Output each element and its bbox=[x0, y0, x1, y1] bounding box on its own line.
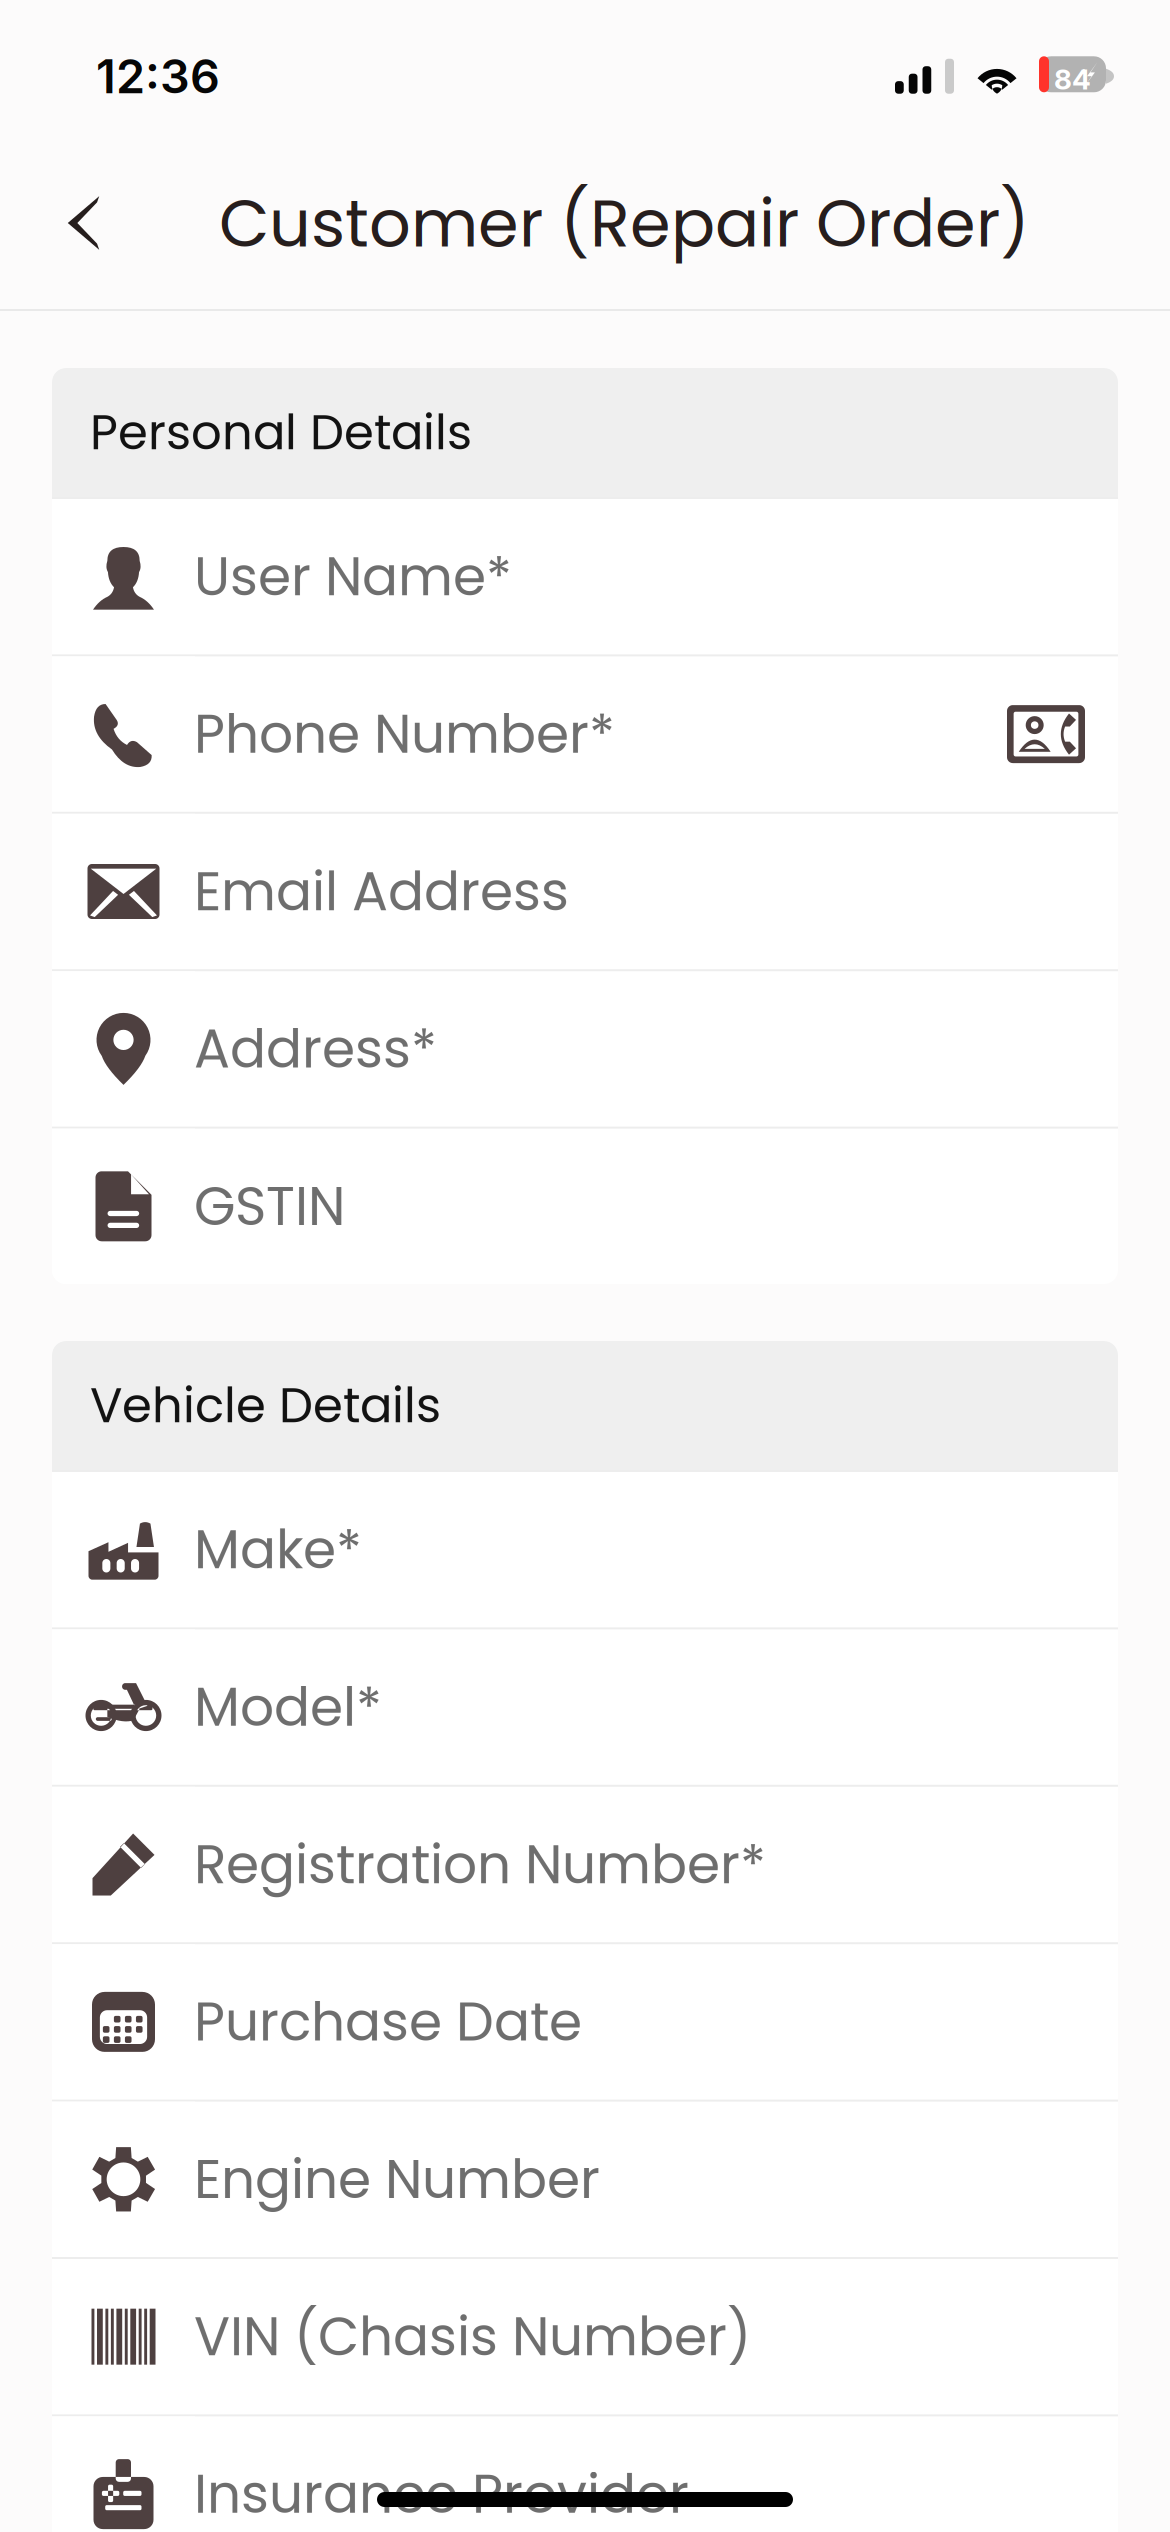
button[interactable]: VIN (Chasis Number) bbox=[52, 2259, 1118, 2414]
staticText: GSTIN bbox=[194, 1169, 345, 1244]
staticText: Phone Number* bbox=[194, 697, 615, 771]
button[interactable]: Address* bbox=[52, 971, 1118, 1127]
button[interactable]: Back bbox=[0, 178, 143, 279]
staticText: Registration Number* bbox=[194, 1827, 766, 1902]
staticText: VIN (Chasis Number) bbox=[194, 2299, 751, 2374]
staticText: Email Address bbox=[194, 854, 569, 929]
button[interactable]: Registration Number* bbox=[52, 1787, 1118, 1942]
button[interactable]: Make* bbox=[52, 1472, 1118, 1627]
staticText: 12:36 bbox=[96, 48, 220, 104]
button[interactable]: Email Address bbox=[52, 814, 1118, 969]
staticText: Vehicle Details bbox=[90, 1372, 441, 1439]
staticText: Insurance Provider bbox=[194, 2457, 689, 2531]
staticText: Customer (Repair Order) bbox=[219, 178, 1030, 269]
staticText: Purchase Date bbox=[194, 1985, 582, 2059]
button[interactable]: User Name* bbox=[52, 499, 1118, 654]
staticText: Make* bbox=[194, 1512, 362, 1587]
button[interactable]: Phone Number* bbox=[52, 656, 1118, 812]
button[interactable]: Model* bbox=[52, 1629, 1118, 1785]
button[interactable]: GSTIN bbox=[52, 1129, 1118, 1284]
staticText: 84 bbox=[1054, 62, 1091, 96]
staticText: User Name* bbox=[194, 539, 512, 614]
button[interactable]: Purchase Date bbox=[52, 1944, 1118, 2100]
staticText: Model* bbox=[194, 1670, 382, 1744]
staticText: Engine Number bbox=[194, 2142, 600, 2217]
button[interactable]: Engine Number bbox=[52, 2102, 1118, 2257]
staticText: Personal Details bbox=[90, 399, 472, 466]
button[interactable]: Insurance Provider bbox=[52, 2416, 1118, 2532]
staticText: Address* bbox=[194, 1012, 437, 1086]
